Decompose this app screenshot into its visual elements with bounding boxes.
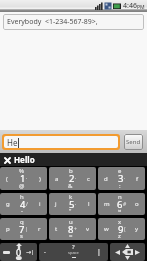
staticText: t	[55, 225, 58, 233]
staticText: @	[19, 182, 25, 190]
staticText: +	[74, 226, 77, 233]
staticText: u	[69, 218, 73, 226]
staticText: /	[26, 201, 28, 208]
button[interactable]: Space	[39, 243, 108, 261]
staticText: 7	[19, 223, 25, 236]
button[interactable]: He	[4, 136, 118, 148]
staticText: )	[39, 175, 41, 183]
staticText: #	[123, 201, 127, 208]
staticText: k	[69, 193, 73, 201]
staticText: :	[119, 182, 121, 190]
staticText: g	[6, 200, 10, 208]
staticText: y	[135, 225, 139, 233]
staticText: 4	[20, 198, 26, 211]
button[interactable]: Close suggestions	[2, 155, 12, 165]
button[interactable]: 5	[49, 193, 96, 215]
staticText: q	[20, 218, 24, 226]
staticText: -	[21, 207, 23, 215]
staticText: Everybody <1-234-567-89>,	[7, 17, 98, 27]
staticText: j	[55, 200, 57, 208]
button[interactable]: 2	[49, 167, 96, 190]
staticText: w	[104, 225, 109, 233]
staticText: Hello	[14, 154, 35, 165]
staticText: (	[6, 175, 8, 183]
button[interactable]: 1	[0, 167, 47, 190]
staticText: d	[104, 175, 108, 183]
staticText: (	[124, 226, 126, 233]
button[interactable]: Zero and shift	[0, 243, 37, 261]
button[interactable]: 8	[49, 218, 96, 240]
staticText: 5	[69, 198, 75, 211]
staticText: a	[55, 175, 59, 183]
staticText: m	[104, 200, 110, 208]
button[interactable]: Send	[124, 134, 143, 150]
staticText: ·	[124, 175, 126, 182]
staticText: l	[88, 200, 90, 208]
staticText: |	[25, 226, 28, 233]
staticText: p	[6, 225, 10, 233]
staticText: e	[118, 167, 122, 175]
button[interactable]: 9	[98, 218, 145, 240]
staticText: .	[44, 246, 46, 256]
staticText: 2	[69, 172, 75, 185]
staticText: 3	[118, 172, 124, 185]
staticText: ¤	[118, 207, 122, 215]
staticText: →|	[26, 248, 35, 256]
staticText: He	[7, 137, 18, 148]
staticText: "	[69, 207, 72, 215]
button[interactable]: 6	[98, 193, 145, 215]
staticText: b	[69, 167, 73, 175]
staticText: ?	[72, 243, 75, 251]
staticText: 0	[16, 246, 22, 258]
staticText: v	[86, 225, 90, 233]
staticText: 6	[117, 198, 123, 211]
staticText: space	[68, 250, 79, 255]
staticText: ·	[75, 175, 77, 182]
staticText: ·	[26, 175, 28, 182]
button[interactable]: 3	[98, 167, 145, 190]
staticText: x	[118, 218, 122, 226]
staticText: Send	[126, 138, 141, 146]
staticText: f	[136, 175, 139, 183]
staticText: i	[39, 200, 41, 208]
staticText: h	[20, 193, 24, 201]
staticText: |	[97, 247, 101, 257]
staticText: s	[20, 232, 23, 240]
button[interactable]: Everybody <1-234-567-89>,	[3, 14, 144, 30]
staticText: 4:46	[123, 1, 137, 11]
staticText: z	[118, 232, 121, 240]
button[interactable]: 4	[0, 193, 47, 215]
button[interactable]: Delete and arrow keys	[110, 243, 145, 261]
staticText: r	[38, 225, 41, 233]
staticText: 9	[118, 223, 124, 236]
staticText: PM	[137, 4, 145, 11]
staticText: 8	[68, 223, 74, 236]
staticText: ·	[75, 201, 77, 208]
staticText: 1	[20, 172, 26, 185]
button[interactable]: Hello	[14, 154, 35, 165]
staticText: =	[69, 232, 73, 240]
staticText: c	[87, 175, 90, 183]
staticText: n	[118, 193, 122, 201]
staticText: o	[135, 200, 139, 208]
staticText: &	[68, 182, 73, 190]
staticText: %	[19, 167, 24, 175]
button[interactable]: 7	[0, 218, 47, 240]
